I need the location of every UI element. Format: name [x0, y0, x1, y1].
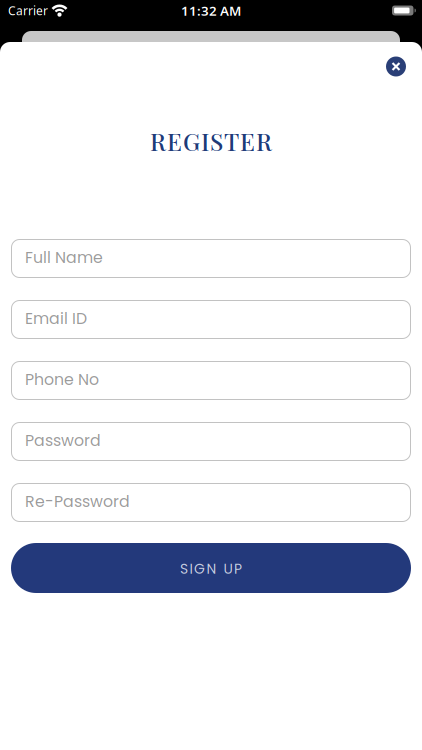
staticText: REGISTER — [150, 125, 272, 157]
staticText: Full Name — [25, 246, 103, 268]
staticText: Carrier — [8, 2, 48, 18]
staticText: SIGN UP — [180, 559, 242, 579]
staticText: Re-Password — [25, 490, 130, 512]
staticText: Email ID — [25, 307, 87, 329]
staticText: Password — [25, 429, 101, 451]
staticText: Phone No — [25, 368, 99, 390]
staticText: 11:32 AM — [181, 2, 241, 19]
